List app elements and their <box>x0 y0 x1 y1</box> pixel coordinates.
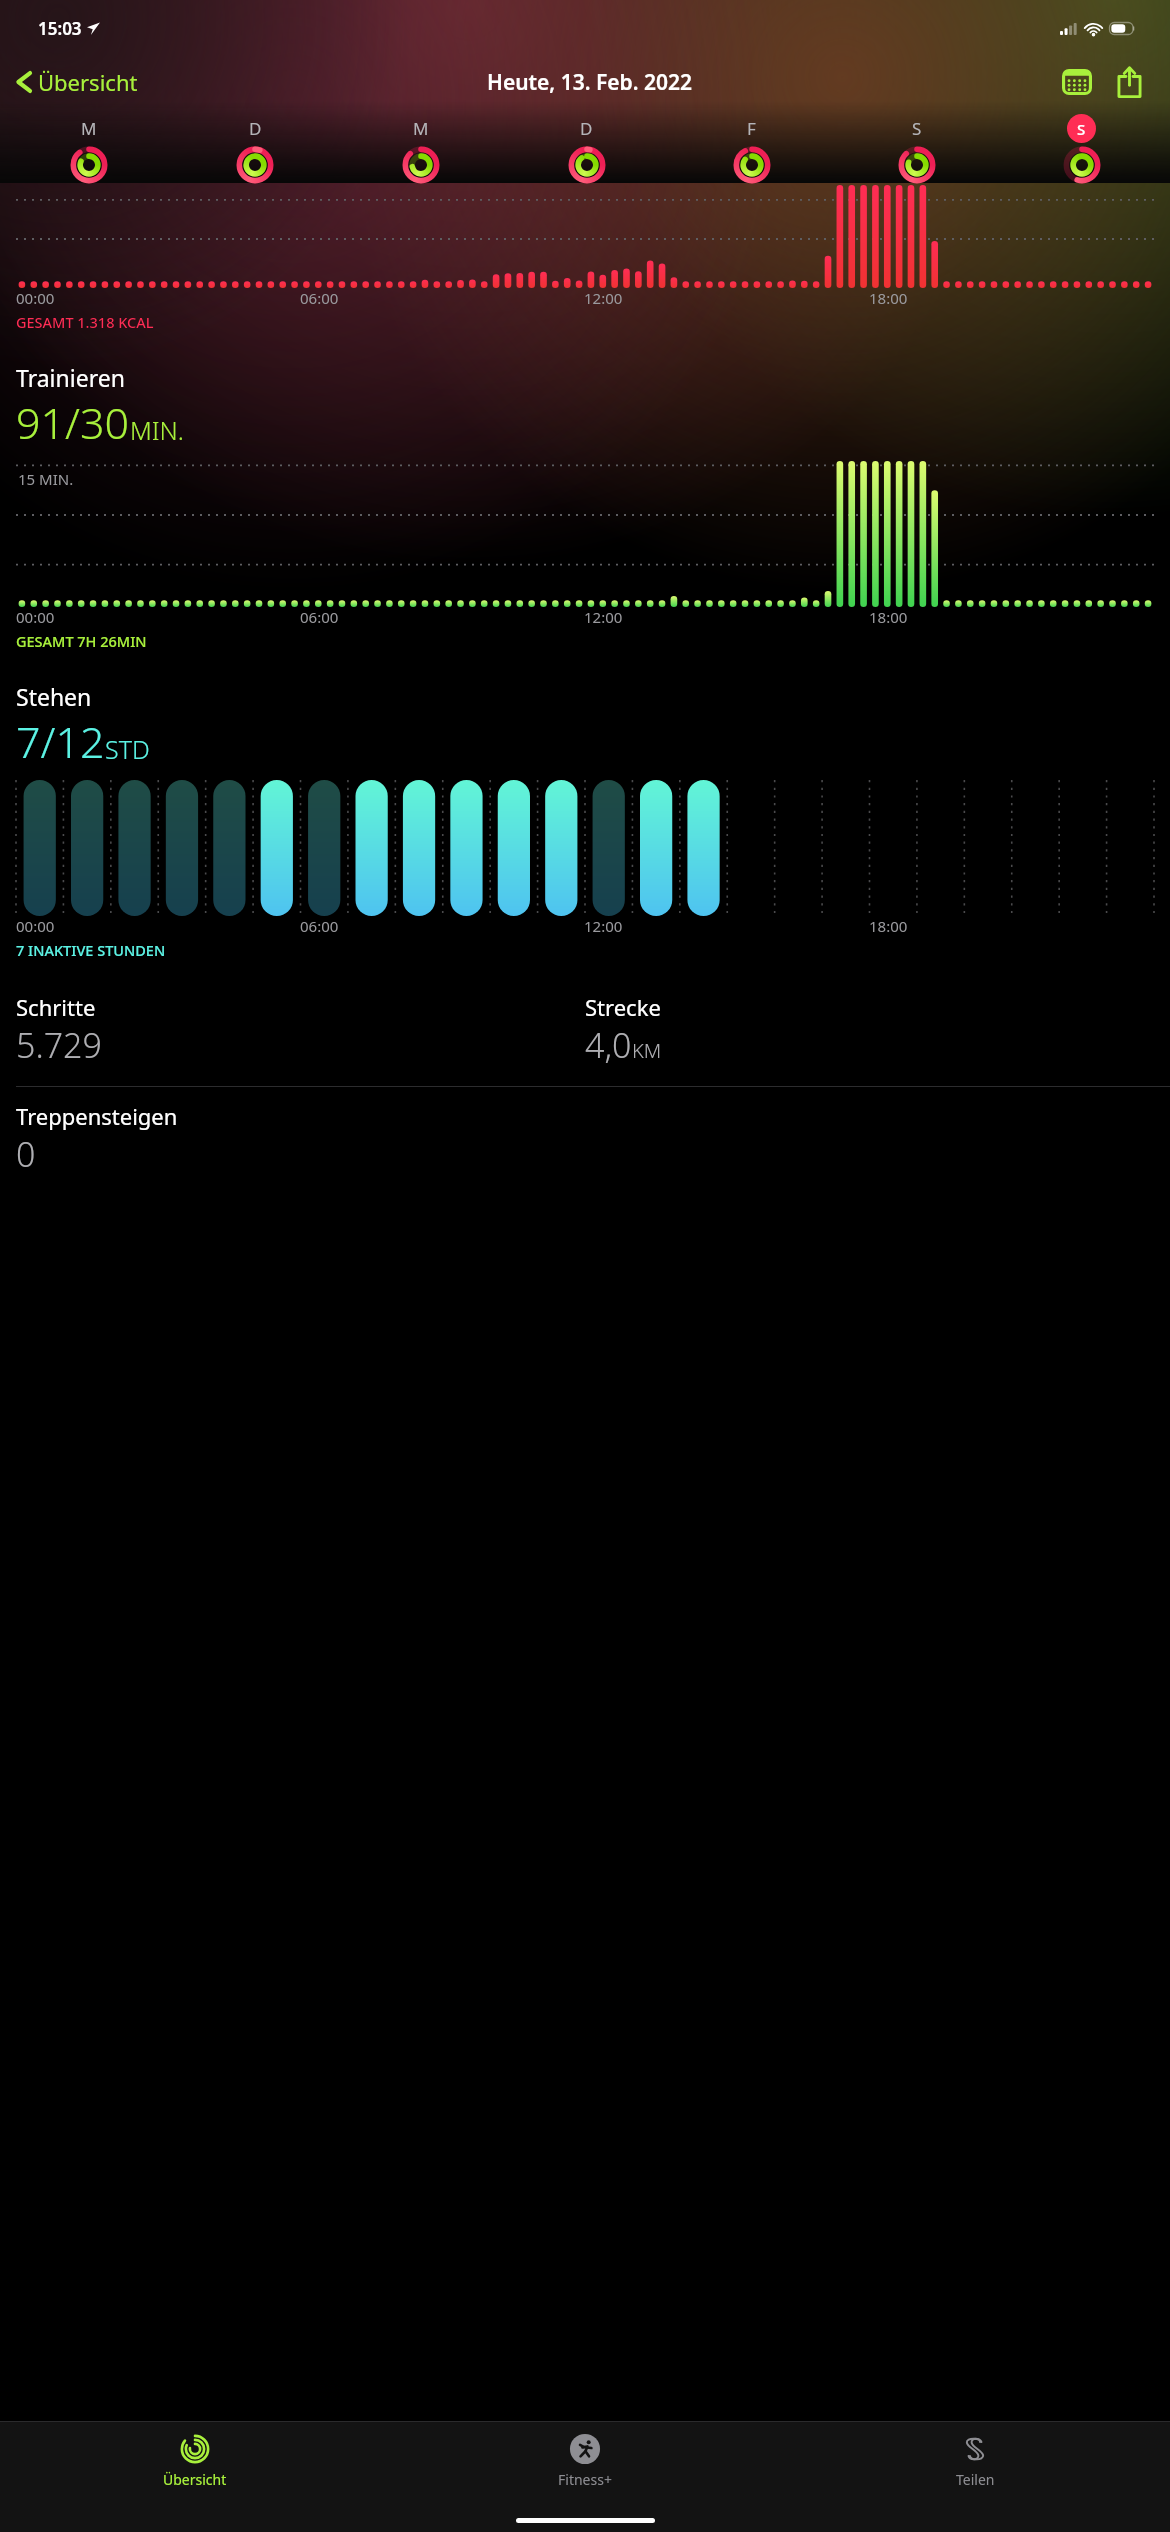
staticText: 12:00 <box>584 916 623 936</box>
button[interactable] <box>669 147 834 183</box>
staticText: 91/30 <box>16 393 130 452</box>
staticText: 18:00 <box>869 288 908 308</box>
staticText: D <box>580 117 593 140</box>
staticText: Übersicht <box>38 67 138 97</box>
staticText: 12:00 <box>584 607 623 627</box>
staticText: Teilen <box>956 2470 995 2489</box>
button[interactable]: Übersicht <box>10 61 142 103</box>
staticText: S <box>1077 119 1086 139</box>
staticText: 15 MIN. <box>18 469 74 489</box>
staticText: 06:00 <box>300 288 339 308</box>
staticText: Fitness+ <box>558 2470 612 2489</box>
staticText: D <box>249 117 262 140</box>
staticText: Schritte <box>16 992 96 1022</box>
staticText: M <box>413 117 429 140</box>
staticText: M <box>81 117 97 140</box>
button[interactable]: Übersicht <box>0 2431 390 2491</box>
staticText: Strecke <box>585 992 661 1022</box>
staticText: 12:00 <box>584 288 623 308</box>
staticText: 7 INAKTIVE STUNDEN <box>16 940 166 960</box>
button[interactable]: Schritte <box>16 992 102 1068</box>
button[interactable] <box>504 147 669 183</box>
staticText: 06:00 <box>300 607 339 627</box>
staticText: Stehen <box>16 681 92 712</box>
button[interactable]: Strecke <box>585 992 662 1068</box>
button[interactable] <box>6 147 172 183</box>
staticText: GESAMT 1.318 KCAL <box>16 312 154 332</box>
staticText: Trainieren <box>16 362 125 393</box>
staticText: 18:00 <box>869 916 908 936</box>
button[interactable] <box>834 147 999 183</box>
staticText: KM <box>632 1037 662 1064</box>
staticText: 7/12 <box>16 712 105 771</box>
staticText: 15:03 <box>38 17 82 40</box>
button[interactable]: Fitness+ <box>390 2431 780 2491</box>
staticText: 06:00 <box>300 916 339 936</box>
button[interactable] <box>999 147 1164 183</box>
staticText: 5.729 <box>16 1022 102 1068</box>
staticText: 0 <box>16 1131 36 1177</box>
button[interactable]: Teilen <box>1108 61 1150 103</box>
staticText: 18:00 <box>869 607 908 627</box>
staticText: Heute, 13. Feb. 2022 <box>487 68 693 97</box>
staticText: STD <box>105 732 150 766</box>
button[interactable]: Trainieren <box>16 362 1154 452</box>
staticText: 4,0 <box>585 1022 632 1068</box>
staticText: GESAMT 7H 26MIN <box>16 631 147 651</box>
button[interactable] <box>338 147 504 183</box>
button[interactable]: Stehen <box>16 681 1154 771</box>
staticText: F <box>747 117 756 140</box>
staticText: 00:00 <box>16 288 55 308</box>
button[interactable] <box>172 147 338 183</box>
staticText: Übersicht <box>163 2470 227 2489</box>
staticText: Treppensteigen <box>16 1101 178 1131</box>
staticText: MIN. <box>130 413 184 447</box>
staticText: S <box>912 117 922 140</box>
button[interactable]: Treppensteigen <box>16 1101 178 1177</box>
button[interactable]: Kalender <box>1056 61 1098 103</box>
staticText: 00:00 <box>16 607 55 627</box>
button[interactable]: Teilen <box>780 2431 1170 2491</box>
staticText: 00:00 <box>16 916 55 936</box>
